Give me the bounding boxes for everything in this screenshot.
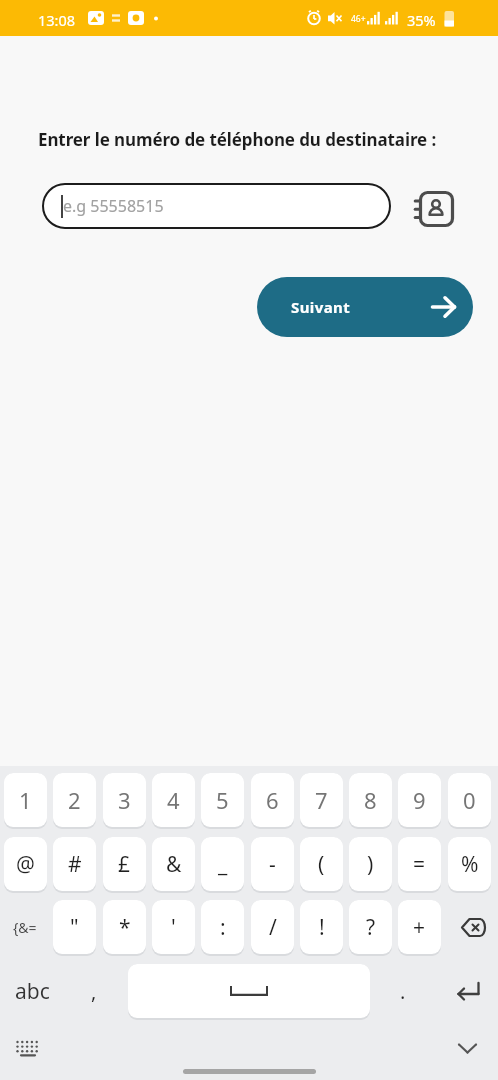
staticText: 0 bbox=[463, 785, 476, 815]
staticText: _ bbox=[218, 850, 228, 879]
staticText: " bbox=[70, 913, 79, 942]
button[interactable]: £ bbox=[103, 837, 146, 893]
staticText: 5 bbox=[216, 785, 229, 815]
staticText: e.g 55558515 bbox=[63, 195, 164, 217]
staticText: = bbox=[413, 850, 426, 879]
button[interactable] bbox=[448, 900, 498, 954]
staticText: - bbox=[269, 850, 276, 879]
button[interactable]: ( bbox=[300, 837, 343, 893]
button[interactable]: 0 bbox=[448, 773, 491, 829]
button[interactable]: 8 bbox=[349, 773, 392, 829]
staticText: Entrer le numéro de téléphone du destina… bbox=[38, 128, 437, 151]
button[interactable]: % bbox=[448, 837, 491, 893]
staticText: 6 bbox=[266, 785, 279, 815]
staticText: 35% bbox=[407, 10, 436, 30]
staticText: Suivant bbox=[291, 297, 351, 317]
staticText: @ bbox=[16, 850, 35, 879]
button[interactable]: / bbox=[251, 900, 294, 956]
button[interactable]: ! bbox=[300, 900, 343, 956]
staticText: 8 bbox=[364, 785, 377, 815]
staticText: # bbox=[68, 850, 82, 879]
staticText: & bbox=[166, 850, 182, 879]
staticText: ' bbox=[171, 913, 176, 942]
staticText: £ bbox=[118, 850, 131, 879]
button[interactable]: , bbox=[72, 964, 116, 1018]
button[interactable]: ' bbox=[152, 900, 195, 956]
staticText: / bbox=[269, 913, 277, 942]
button[interactable]: 4 bbox=[152, 773, 195, 829]
button[interactable]: 6 bbox=[251, 773, 294, 829]
staticText: {&= bbox=[13, 918, 37, 937]
button[interactable]: 5 bbox=[201, 773, 244, 829]
button[interactable] bbox=[412, 186, 458, 230]
button[interactable]: 7 bbox=[300, 773, 343, 829]
button[interactable]: Suivant bbox=[257, 277, 473, 337]
button[interactable]: 2 bbox=[53, 773, 96, 829]
button[interactable]: e.g 55558515 bbox=[42, 183, 391, 229]
staticText: ( bbox=[318, 850, 325, 879]
staticText: ! bbox=[319, 913, 325, 942]
button[interactable]: ) bbox=[349, 837, 392, 893]
button[interactable]: # bbox=[53, 837, 96, 893]
staticText: 7 bbox=[315, 785, 328, 815]
button[interactable]: 3 bbox=[103, 773, 146, 829]
staticText: : bbox=[220, 913, 226, 942]
staticText: + bbox=[413, 913, 426, 942]
staticText: 3 bbox=[118, 785, 131, 815]
button[interactable] bbox=[128, 964, 370, 1020]
button[interactable]: ? bbox=[349, 900, 392, 956]
button[interactable]: 1 bbox=[4, 773, 47, 829]
staticText: , bbox=[91, 978, 97, 1005]
button[interactable]: = bbox=[398, 837, 441, 893]
button[interactable] bbox=[10, 1034, 44, 1062]
button[interactable]: & bbox=[152, 837, 195, 893]
button[interactable]: _ bbox=[201, 837, 244, 893]
button[interactable]: + bbox=[398, 900, 441, 956]
button[interactable]: - bbox=[251, 837, 294, 893]
button[interactable]: . bbox=[381, 964, 425, 1018]
staticText: 2 bbox=[68, 785, 81, 815]
staticText: 1 bbox=[19, 785, 32, 815]
button[interactable]: " bbox=[53, 900, 96, 956]
staticText: 46+ bbox=[351, 13, 366, 25]
staticText: % bbox=[461, 850, 479, 879]
staticText: * bbox=[119, 913, 131, 942]
button[interactable]: @ bbox=[4, 837, 47, 893]
button[interactable] bbox=[450, 1034, 484, 1062]
staticText: abc bbox=[15, 977, 50, 1006]
staticText: ) bbox=[367, 850, 374, 879]
staticText: . bbox=[400, 978, 406, 1005]
button[interactable]: * bbox=[103, 900, 146, 956]
button[interactable]: : bbox=[201, 900, 244, 956]
button[interactable]: 9 bbox=[398, 773, 441, 829]
button[interactable] bbox=[443, 964, 493, 1018]
staticText: 13:08 bbox=[38, 10, 76, 30]
staticText: ? bbox=[366, 913, 376, 942]
staticText: 4 bbox=[167, 785, 180, 815]
button[interactable]: {&= bbox=[0, 900, 50, 954]
button[interactable]: abc bbox=[4, 964, 60, 1018]
staticText: 9 bbox=[413, 785, 426, 815]
